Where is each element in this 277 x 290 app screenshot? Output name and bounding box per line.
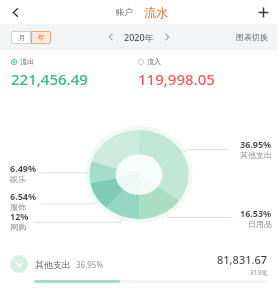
button[interactable]: 其他支出 bbox=[0, 248, 277, 280]
staticText: 6.49% bbox=[10, 162, 37, 174]
button[interactable]: 流水 bbox=[142, 5, 170, 20]
staticText: 81,831.67 bbox=[217, 252, 268, 267]
button[interactable]: Add bbox=[249, 0, 277, 24]
staticText: 娱乐 bbox=[10, 174, 26, 184]
button[interactable]: 年 bbox=[31, 31, 51, 44]
staticText: 流入 bbox=[147, 57, 161, 66]
staticText: 6.54% bbox=[10, 190, 37, 202]
button[interactable]: Previous year bbox=[102, 28, 120, 46]
button[interactable]: Back bbox=[0, 0, 30, 24]
staticText: 221,456.49 bbox=[11, 69, 88, 89]
staticText: 日用品 bbox=[248, 219, 272, 229]
staticText: 图表切换 bbox=[236, 32, 268, 42]
button[interactable]: 月 bbox=[11, 31, 31, 44]
staticText: 12% bbox=[10, 210, 29, 222]
staticText: 服饰 bbox=[10, 202, 26, 212]
staticText: 其他支出 bbox=[240, 150, 272, 160]
staticText: 账户 bbox=[116, 7, 133, 18]
staticText: 月 bbox=[18, 33, 25, 42]
staticText: 2020年 bbox=[124, 31, 154, 43]
staticText: 119,998.05 bbox=[138, 69, 215, 89]
button[interactable]: Next year bbox=[158, 28, 176, 46]
staticText: 年 bbox=[38, 33, 45, 42]
staticText: 319笔 bbox=[250, 268, 268, 277]
staticText: 流出 bbox=[20, 57, 34, 66]
staticText: 流水 bbox=[144, 5, 168, 20]
staticText: 16.53% bbox=[240, 207, 272, 219]
staticText: 36.95% bbox=[240, 138, 272, 150]
staticText: 36.95% bbox=[76, 259, 104, 270]
button[interactable]: 图表切换 bbox=[236, 32, 268, 42]
staticText: 其他支出 bbox=[35, 259, 71, 270]
button[interactable]: 账户 bbox=[114, 7, 135, 18]
staticText: 网购 bbox=[10, 222, 26, 232]
